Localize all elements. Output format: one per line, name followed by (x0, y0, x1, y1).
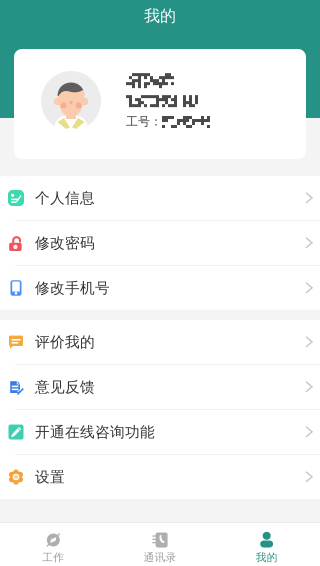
button[interactable]: 通讯录 (107, 523, 213, 566)
button[interactable]: 设置 (0, 455, 320, 499)
staticText: 评价我的 (35, 333, 95, 351)
button[interactable]: 意见反馈 (0, 365, 320, 409)
button[interactable]: 评价我的 (0, 320, 320, 364)
staticText: 我的 (144, 6, 176, 26)
button[interactable]: 开通在线咨询功能 (0, 410, 320, 454)
staticText: 工作 (42, 551, 64, 564)
button[interactable]: 修改手机号 (0, 266, 320, 310)
button[interactable]: 个人信息 (0, 176, 320, 220)
button[interactable]: 我的 (213, 523, 320, 566)
staticText: 意见反馈 (35, 378, 95, 396)
staticText: 工号： (126, 114, 162, 129)
staticText: 个人信息 (35, 189, 95, 207)
staticText: 我的 (256, 551, 278, 564)
button[interactable]: 修改密码 (0, 221, 320, 265)
staticText: 设置 (35, 468, 65, 486)
staticText: 通讯录 (143, 551, 176, 564)
staticText: 修改手机号 (35, 279, 110, 297)
staticText: 开通在线咨询功能 (35, 423, 155, 441)
button[interactable]: 工作 (0, 523, 107, 566)
staticText: 修改密码 (35, 234, 95, 252)
